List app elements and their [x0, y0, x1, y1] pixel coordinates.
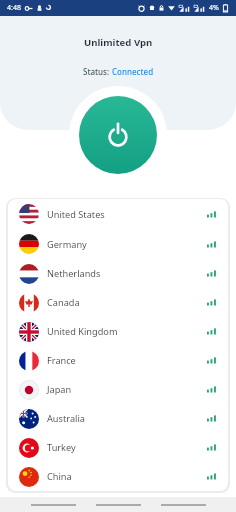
- button[interactable]: Japan: [8, 375, 228, 404]
- button[interactable]: United States: [8, 199, 228, 229]
- staticText: Canada: [47, 296, 80, 309]
- button[interactable]: Canada: [8, 288, 228, 317]
- button[interactable]: Australia: [8, 404, 228, 433]
- staticText: France: [47, 354, 76, 367]
- button[interactable]: China: [8, 462, 228, 491]
- staticText: 4:48: [7, 3, 21, 13]
- staticText: 4%: [209, 3, 219, 13]
- staticText: Turkey: [47, 441, 76, 454]
- staticText: Status:: [83, 66, 112, 77]
- button[interactable]: Turkey: [8, 433, 228, 462]
- staticText: Netherlands: [47, 267, 101, 280]
- button[interactable]: France: [8, 346, 228, 375]
- button[interactable]: Netherlands: [8, 259, 228, 288]
- button[interactable]: [79, 96, 157, 174]
- staticText: United Kingdom: [47, 325, 118, 338]
- button[interactable]: Germany: [8, 229, 228, 259]
- staticText: China: [47, 470, 72, 483]
- staticText: Germany: [47, 238, 87, 251]
- staticText: Connected: [112, 66, 154, 77]
- staticText: Unlimited Vpn: [84, 36, 153, 49]
- staticText: United States: [47, 208, 105, 221]
- staticText: Australia: [47, 412, 85, 425]
- staticText: Japan: [47, 383, 72, 396]
- button[interactable]: United Kingdom: [8, 317, 228, 346]
